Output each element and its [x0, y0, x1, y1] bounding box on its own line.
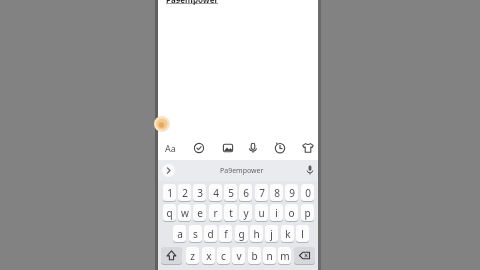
staticText: 3 — [197, 186, 203, 200]
staticText: o — [288, 206, 295, 220]
staticText: h — [253, 227, 260, 241]
staticText: r — [213, 206, 218, 220]
staticText: 4 — [213, 186, 219, 200]
staticText: Pa9empower — [166, 0, 219, 5]
button[interactable]: 8 — [270, 184, 283, 201]
button[interactable]: 1 — [163, 184, 176, 201]
button[interactable]: q — [163, 204, 176, 221]
button[interactable]: z — [186, 247, 199, 264]
button[interactable]: s — [189, 225, 202, 242]
staticText: s — [193, 227, 198, 241]
button[interactable]: e — [193, 204, 206, 221]
button[interactable]: 0 — [301, 184, 314, 201]
staticText: 9 — [289, 186, 295, 200]
button[interactable]: p — [301, 204, 314, 221]
staticText: w — [181, 206, 189, 220]
button[interactable]: h — [250, 225, 263, 242]
staticText: g — [238, 227, 245, 241]
staticText: 1 — [167, 186, 173, 200]
button[interactable]: f — [219, 225, 232, 242]
button[interactable] — [306, 165, 314, 176]
staticText: t — [229, 206, 233, 220]
button[interactable] — [162, 164, 175, 177]
button[interactable]: x — [202, 247, 215, 264]
button[interactable] — [192, 141, 206, 155]
button[interactable]: i — [270, 204, 283, 221]
staticText: p — [304, 206, 311, 220]
button[interactable]: 5 — [224, 184, 237, 201]
button[interactable]: 2 — [178, 184, 191, 201]
button[interactable]: l — [296, 225, 309, 242]
staticText: 0 — [305, 186, 311, 200]
button[interactable] — [301, 141, 315, 155]
staticText: m — [280, 249, 290, 263]
staticText: 2 — [182, 186, 188, 200]
button[interactable]: Pa9empower — [220, 166, 264, 176]
staticText: i — [275, 206, 278, 220]
button[interactable]: j — [265, 225, 278, 242]
button[interactable]: c — [217, 247, 230, 264]
staticText: 8 — [274, 186, 280, 200]
staticText: c — [221, 249, 226, 263]
button[interactable]: 9 — [285, 184, 298, 201]
button[interactable]: 6 — [239, 184, 252, 201]
button[interactable]: 4 — [209, 184, 222, 201]
staticText: u — [258, 206, 265, 220]
staticText: k — [285, 227, 291, 241]
staticText: y — [243, 206, 249, 220]
button[interactable]: Aa — [165, 142, 176, 154]
staticText: 7 — [259, 186, 265, 200]
button[interactable]: t — [224, 204, 237, 221]
staticText: d — [207, 227, 214, 241]
button[interactable]: 7 — [255, 184, 268, 201]
button[interactable]: n — [263, 247, 276, 264]
staticText: f — [224, 227, 228, 241]
button[interactable]: r — [209, 204, 222, 221]
button[interactable] — [221, 141, 235, 155]
staticText: z — [190, 249, 195, 263]
staticText: q — [166, 206, 173, 220]
button[interactable]: 3 — [193, 184, 206, 201]
staticText: j — [270, 227, 273, 241]
button[interactable] — [294, 247, 315, 264]
button[interactable]: w — [178, 204, 191, 221]
staticText: 5 — [228, 186, 234, 200]
button[interactable]: o — [285, 204, 298, 221]
button[interactable] — [273, 141, 287, 155]
staticText: 6 — [243, 186, 249, 200]
staticText: b — [251, 249, 258, 263]
button[interactable] — [161, 247, 182, 264]
staticText: a — [177, 227, 183, 241]
button[interactable]: g — [235, 225, 248, 242]
button[interactable]: u — [255, 204, 268, 221]
staticText: l — [301, 227, 304, 241]
staticText: e — [197, 206, 203, 220]
staticText: x — [206, 249, 212, 263]
staticText: n — [266, 249, 273, 263]
button[interactable]: k — [281, 225, 294, 242]
button[interactable]: b — [248, 247, 261, 264]
button[interactable]: a — [173, 225, 186, 242]
button[interactable]: y — [239, 204, 252, 221]
button[interactable]: m — [278, 247, 291, 264]
staticText: v — [236, 249, 242, 263]
button[interactable]: d — [204, 225, 217, 242]
button[interactable]: v — [232, 247, 245, 264]
button[interactable] — [246, 141, 260, 155]
